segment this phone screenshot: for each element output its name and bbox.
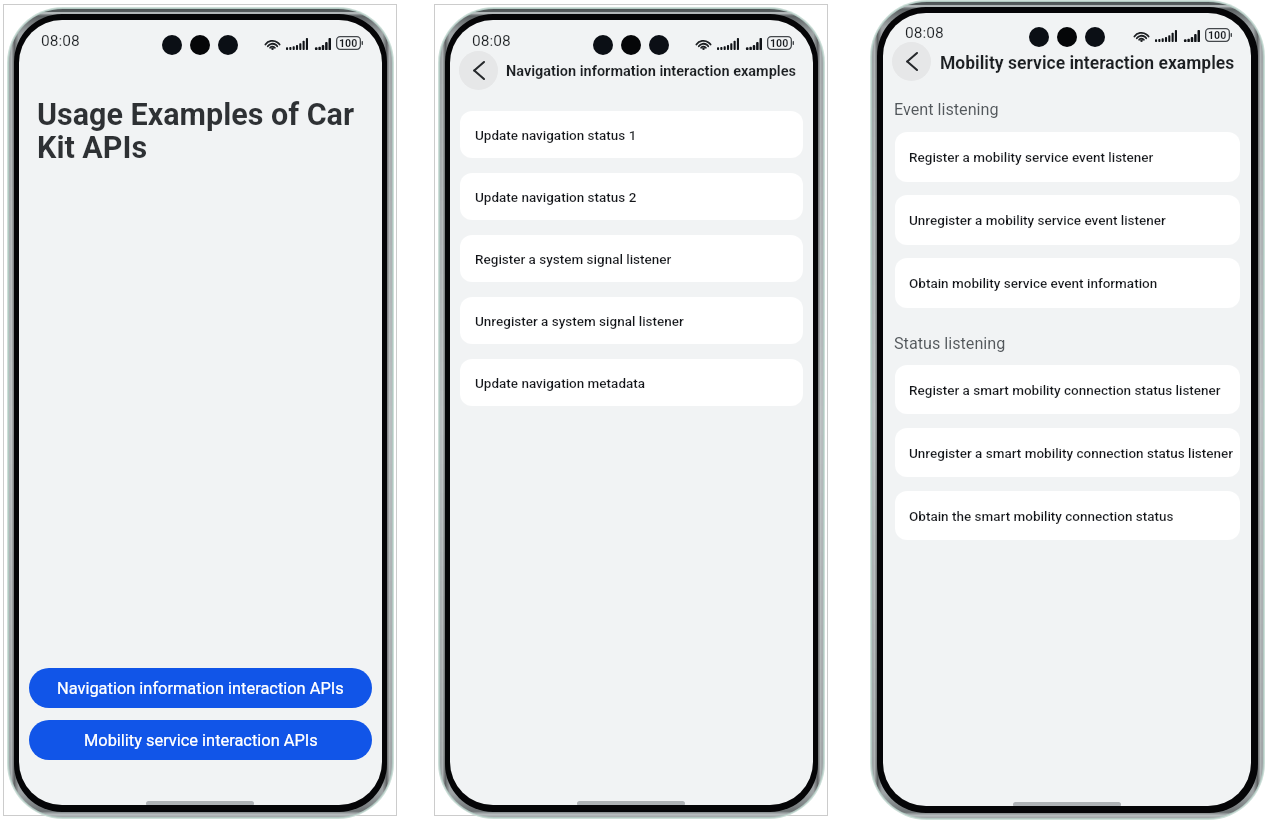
staticText: 08:08 [905,24,944,42]
staticText: Obtain mobility service event informatio… [909,275,1158,291]
staticText: Unregister a smart mobility connection s… [909,445,1234,461]
button[interactable]: Obtain the smart mobility connection sta… [895,491,1240,540]
staticText: 100 [339,37,358,49]
staticText: Navigation information interaction examp… [506,63,796,80]
button[interactable]: Unregister a system signal listener [460,297,803,344]
button[interactable]: Back [892,42,931,81]
staticText: Status listening [894,334,1006,353]
button[interactable]: Navigation information interaction APIs [29,668,372,708]
staticText: 100 [1208,29,1227,41]
staticText: Update navigation status 2 [475,189,637,205]
button[interactable]: Back [459,51,498,90]
button[interactable]: Unregister a mobility service event list… [895,195,1240,245]
button[interactable]: Register a smart mobility connection sta… [895,365,1240,414]
button[interactable]: Mobility service interaction APIs [29,720,372,760]
staticText: Register a smart mobility connection sta… [909,382,1221,398]
button[interactable]: Update navigation metadata [460,359,803,406]
staticText: Unregister a mobility service event list… [909,212,1166,228]
button[interactable]: Obtain mobility service event informatio… [895,258,1240,308]
staticText: Event listening [894,100,999,119]
button[interactable]: Unregister a smart mobility connection s… [895,428,1240,477]
staticText: Register a system signal listener [475,251,672,267]
staticText: 08:08 [41,32,80,50]
button[interactable]: Update navigation status 1 [460,111,803,158]
staticText: Navigation information interaction APIs [57,679,344,698]
staticText: 100 [770,37,789,49]
staticText: Mobility service interaction examples [940,53,1235,74]
staticText: Update navigation metadata [475,375,646,391]
staticText: Unregister a system signal listener [475,313,684,329]
staticText: Obtain the smart mobility connection sta… [909,508,1174,524]
button[interactable]: Update navigation status 2 [460,173,803,220]
staticText: Mobility service interaction APIs [84,731,318,750]
staticText: Register a mobility service event listen… [909,149,1154,165]
staticText: Update navigation status 1 [475,127,637,143]
staticText: 08:08 [472,32,511,50]
button[interactable]: Register a mobility service event listen… [895,132,1240,182]
staticText: Usage Examples of Car Kit APIs [37,97,367,166]
button[interactable]: Register a system signal listener [460,235,803,282]
